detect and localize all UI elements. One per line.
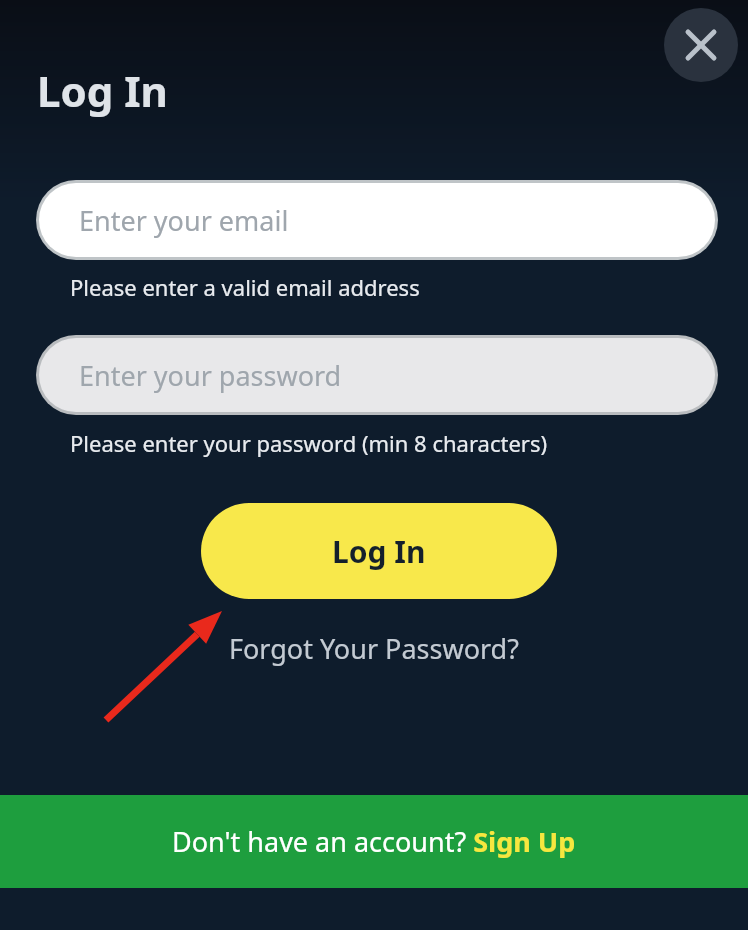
staticText: Log In	[332, 531, 426, 572]
staticText: Please enter your password (min 8 charac…	[70, 428, 548, 458]
button[interactable]	[664, 8, 738, 82]
staticText: Please enter a valid email address	[70, 272, 420, 302]
button[interactable]: Log In	[201, 503, 557, 599]
button[interactable]: Don't have an account? Sign Up	[0, 795, 748, 888]
staticText: Log In	[37, 62, 168, 119]
staticText: Enter your email	[79, 202, 289, 239]
button[interactable]: Enter your email	[39, 183, 715, 257]
button[interactable]: Enter your password	[39, 338, 715, 412]
button[interactable]: Forgot Your Password?	[229, 630, 519, 667]
staticText: Enter your password	[79, 357, 342, 394]
staticText: Don't have an account? Sign Up	[172, 823, 576, 860]
